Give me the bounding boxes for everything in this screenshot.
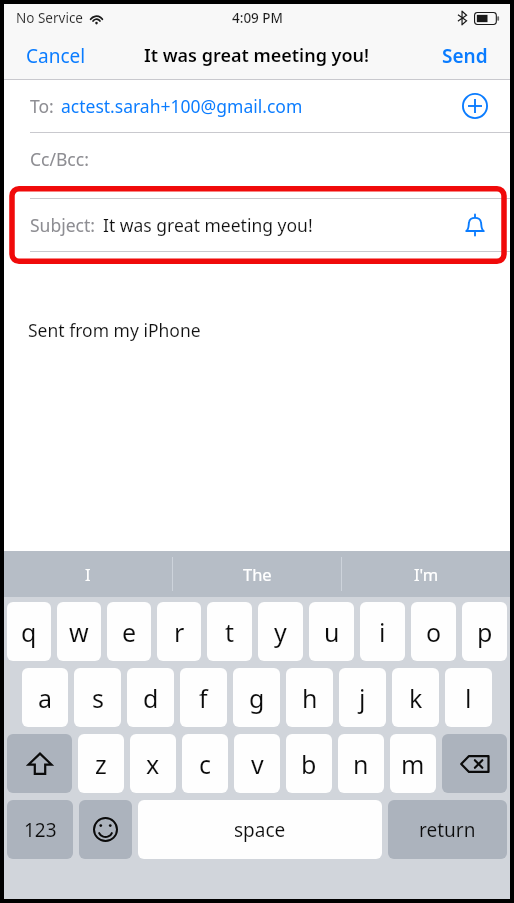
staticText: Sent from my iPhone bbox=[28, 318, 201, 342]
staticText: s bbox=[92, 681, 104, 715]
staticText: I'm bbox=[414, 563, 439, 585]
button[interactable]: l bbox=[445, 668, 492, 727]
button[interactable]: b bbox=[286, 734, 332, 793]
staticText: j bbox=[359, 681, 366, 715]
button[interactable]: u bbox=[309, 602, 354, 661]
staticText: a bbox=[38, 681, 53, 715]
staticText: Subject: bbox=[30, 213, 95, 237]
button[interactable]: f bbox=[180, 668, 227, 727]
button[interactable]: r bbox=[157, 602, 201, 661]
button[interactable]: To: bbox=[4, 80, 510, 132]
button[interactable]: Send bbox=[420, 33, 510, 79]
button[interactable]: j bbox=[339, 668, 386, 727]
button[interactable]: 123 bbox=[7, 800, 73, 859]
staticText: No Service bbox=[16, 9, 83, 27]
staticText: It was great meeting you! bbox=[103, 213, 313, 237]
staticText: k bbox=[409, 681, 423, 715]
button[interactable]: v bbox=[234, 734, 280, 793]
staticText: f bbox=[199, 681, 208, 715]
button[interactable]: p bbox=[462, 602, 507, 661]
staticText: g bbox=[249, 681, 265, 715]
staticText: i bbox=[379, 615, 386, 649]
staticText: y bbox=[274, 615, 287, 649]
button[interactable]: a bbox=[22, 668, 68, 727]
button[interactable]: I'm bbox=[342, 551, 510, 597]
staticText: r bbox=[174, 615, 185, 649]
button[interactable]: x bbox=[130, 734, 176, 793]
button[interactable]: Subject: bbox=[4, 199, 510, 251]
button[interactable]: k bbox=[392, 668, 439, 727]
button[interactable]: h bbox=[286, 668, 333, 727]
button[interactable]: q bbox=[7, 602, 51, 661]
button[interactable]: Add contact bbox=[462, 93, 488, 119]
staticText: h bbox=[302, 681, 318, 715]
button[interactable]: t bbox=[207, 602, 252, 661]
staticText: I bbox=[85, 563, 91, 585]
button[interactable]: Cancel bbox=[4, 33, 108, 79]
staticText: w bbox=[69, 615, 89, 649]
staticText: return bbox=[419, 817, 476, 843]
button[interactable]: m bbox=[390, 734, 436, 793]
staticText: o bbox=[426, 615, 442, 649]
button[interactable]: return bbox=[388, 800, 507, 859]
staticText: z bbox=[95, 747, 107, 781]
staticText: b bbox=[301, 747, 317, 781]
button[interactable]: n bbox=[338, 734, 384, 793]
staticText: actest.sarah+100@gmail.com bbox=[61, 94, 303, 118]
staticText: It was great meeting you! bbox=[144, 43, 370, 68]
staticText: e bbox=[122, 615, 137, 649]
staticText: To: bbox=[30, 94, 54, 118]
staticText: m bbox=[401, 747, 425, 781]
button[interactable]: Delete bbox=[442, 734, 507, 793]
staticText: Cc/Bcc: bbox=[30, 147, 89, 171]
button[interactable]: z bbox=[78, 734, 124, 793]
staticText: q bbox=[21, 615, 37, 649]
button[interactable]: c bbox=[182, 734, 228, 793]
staticText: Cancel bbox=[26, 43, 86, 69]
button[interactable]: d bbox=[127, 668, 174, 727]
staticText: t bbox=[225, 615, 235, 649]
staticText: The bbox=[243, 563, 272, 585]
staticText: n bbox=[353, 747, 369, 781]
button[interactable]: w bbox=[57, 602, 101, 661]
button[interactable]: Notify me bbox=[464, 213, 486, 238]
button[interactable]: I bbox=[4, 551, 172, 597]
button[interactable]: i bbox=[360, 602, 405, 661]
button[interactable]: s bbox=[74, 668, 121, 727]
button[interactable]: Shift bbox=[7, 734, 72, 793]
button[interactable]: y bbox=[258, 602, 303, 661]
button[interactable]: Cc/Bcc: bbox=[4, 133, 510, 185]
staticText: x bbox=[146, 747, 160, 781]
button[interactable]: g bbox=[233, 668, 280, 727]
staticText: space bbox=[234, 817, 286, 843]
button[interactable]: o bbox=[411, 602, 456, 661]
staticText: p bbox=[477, 615, 493, 649]
button[interactable]: e bbox=[107, 602, 151, 661]
staticText: d bbox=[143, 681, 159, 715]
staticText: Send bbox=[442, 43, 488, 69]
staticText: 123 bbox=[24, 817, 57, 843]
staticText: u bbox=[324, 615, 340, 649]
button[interactable]: space bbox=[138, 800, 382, 859]
staticText: l bbox=[465, 681, 472, 715]
staticText: v bbox=[251, 747, 264, 781]
button[interactable]: The bbox=[173, 551, 341, 597]
staticText: c bbox=[199, 747, 212, 781]
button[interactable]: Emoji bbox=[79, 800, 132, 859]
staticText: 4:09 PM bbox=[232, 9, 283, 27]
